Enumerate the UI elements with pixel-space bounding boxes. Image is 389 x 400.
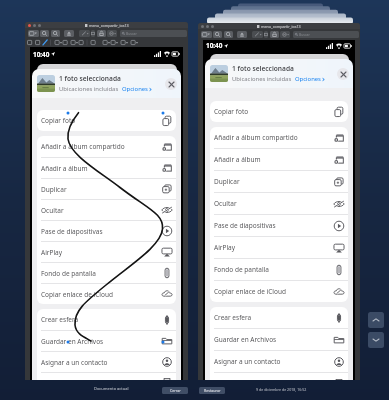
staticText: AirPlay — [41, 248, 63, 257]
button[interactable]: Copiar foto — [37, 110, 176, 131]
button[interactable]: Copiar foto — [210, 101, 348, 122]
staticText: Copiar enlace de iCloud — [214, 287, 286, 296]
button[interactable]: Toolbar button — [51, 30, 60, 37]
staticText: Ubicaciones incluidas — [59, 85, 119, 93]
staticText: Añadir a álbum compartido — [214, 133, 298, 142]
staticText: Añadir a álbum — [214, 155, 261, 164]
staticText: Restaurar — [204, 388, 221, 393]
button[interactable]: Toolbar button — [252, 31, 263, 38]
button[interactable]: Añadir a álbum — [210, 149, 348, 170]
button[interactable]: Pase de diapositivas — [37, 221, 176, 241]
button[interactable]: AirPlay — [37, 242, 176, 262]
button[interactable]: Toolbar button — [64, 30, 74, 37]
button[interactable]: Crear esfera — [210, 307, 348, 328]
button[interactable]: Ocultar — [210, 193, 348, 214]
staticText: Copiar foto — [214, 107, 249, 116]
staticText: Copiar foto — [41, 116, 76, 125]
staticText: Ocultar — [214, 199, 237, 208]
button[interactable]: Cerrar — [165, 78, 177, 90]
button[interactable]: Buscar — [293, 31, 359, 38]
button[interactable]: Duplicar — [37, 179, 176, 199]
staticText: Añadir a álbum compartido — [41, 142, 125, 151]
staticText: Duplicar — [214, 177, 240, 186]
button[interactable]: Toolbar button — [224, 31, 233, 38]
button[interactable]: Asignar a un contacto — [210, 351, 348, 372]
button[interactable]: Buscar — [120, 30, 187, 37]
staticText: Buscar — [126, 31, 137, 36]
button[interactable]: Copiar enlace de iCloud — [210, 281, 348, 302]
staticText: 10:40 — [206, 41, 223, 50]
staticText: 1 foto seleccionada — [232, 64, 294, 73]
staticText: menu_compartir_ios13 — [89, 23, 129, 28]
button[interactable]: Duplicar — [210, 171, 348, 192]
button[interactable]: Pase de diapositivas — [210, 215, 348, 236]
staticText: Opciones — [295, 75, 321, 83]
button[interactable]: Toolbar button — [107, 30, 117, 37]
button[interactable]: Añadir a álbum compartido — [210, 127, 348, 148]
staticText: Cerrar — [170, 388, 181, 393]
staticText: Pase de diapositivas — [41, 227, 103, 236]
staticText: Pase de diapositivas — [214, 221, 276, 230]
staticText: Asignar a un contacto — [41, 358, 108, 367]
staticText: Fondo de pantalla — [214, 265, 269, 274]
button[interactable]: Toolbar button — [270, 31, 279, 38]
button[interactable]: Fondo de pantalla — [37, 263, 176, 283]
button[interactable]: Toolbar button — [213, 31, 222, 38]
button[interactable]: Toolbar button — [264, 31, 268, 38]
staticText: Guardar en Archivos — [214, 335, 277, 344]
staticText: Opciones — [122, 85, 148, 93]
button[interactable]: Añadir a álbum — [37, 158, 176, 178]
staticText: Guardar en Archivos — [41, 337, 104, 346]
button[interactable]: Toolbar button — [237, 31, 247, 38]
button[interactable]: Scroll up — [368, 312, 384, 328]
button[interactable]: Ocultar — [37, 200, 176, 220]
staticText: Crear esfera — [214, 313, 252, 322]
staticText: menu_compartir_ios13 — [261, 24, 301, 29]
button[interactable]: Toolbar button — [280, 31, 290, 38]
button[interactable]: Guardar en Archivos — [210, 329, 348, 350]
staticText: Duplicar — [41, 185, 67, 194]
staticText: Ubicaciones incluidas — [232, 75, 292, 83]
staticText: AirPlay — [214, 243, 236, 252]
staticText: 10:40 — [33, 50, 50, 59]
staticText: Documento actual — [94, 386, 129, 391]
button[interactable]: Copiar enlace de iCloud — [37, 284, 176, 304]
button[interactable]: Toolbar button — [201, 31, 212, 38]
staticText: Crear esfera — [41, 315, 79, 324]
button[interactable]: Toolbar button — [91, 30, 95, 37]
button[interactable]: Cerrar — [337, 68, 349, 80]
staticText: Buscar — [299, 32, 310, 37]
button[interactable]: Toolbar button — [28, 30, 39, 37]
button[interactable]: Restaurar — [199, 387, 225, 394]
staticText: Fondo de pantalla — [41, 269, 96, 278]
button[interactable]: Scroll down — [368, 332, 384, 348]
staticText: 1 foto seleccionada — [59, 74, 121, 83]
button[interactable]: Imprimir — [210, 373, 348, 380]
staticText: Asignar a un contacto — [214, 357, 281, 366]
button[interactable]: Toolbar button — [79, 30, 90, 37]
button[interactable]: Imprimir — [37, 373, 176, 380]
button[interactable]: Toolbar button — [97, 30, 106, 37]
button[interactable]: Crear esfera — [37, 309, 176, 330]
button[interactable]: AirPlay — [210, 237, 348, 258]
button[interactable]: Guardar en Archivos — [37, 331, 176, 351]
staticText: Ocultar — [41, 206, 64, 215]
button[interactable]: Fondo de pantalla — [210, 259, 348, 280]
staticText: Añadir a álbum — [41, 164, 88, 173]
button[interactable]: Toolbar button — [40, 30, 49, 37]
staticText: Copiar enlace de iCloud — [41, 290, 113, 299]
button[interactable]: Cerrar — [162, 387, 188, 394]
staticText: 9 de diciembre de 2018, 16:52 — [256, 387, 307, 392]
button[interactable]: Asignar a un contacto — [37, 352, 176, 372]
button[interactable]: Añadir a álbum compartido — [37, 136, 176, 157]
